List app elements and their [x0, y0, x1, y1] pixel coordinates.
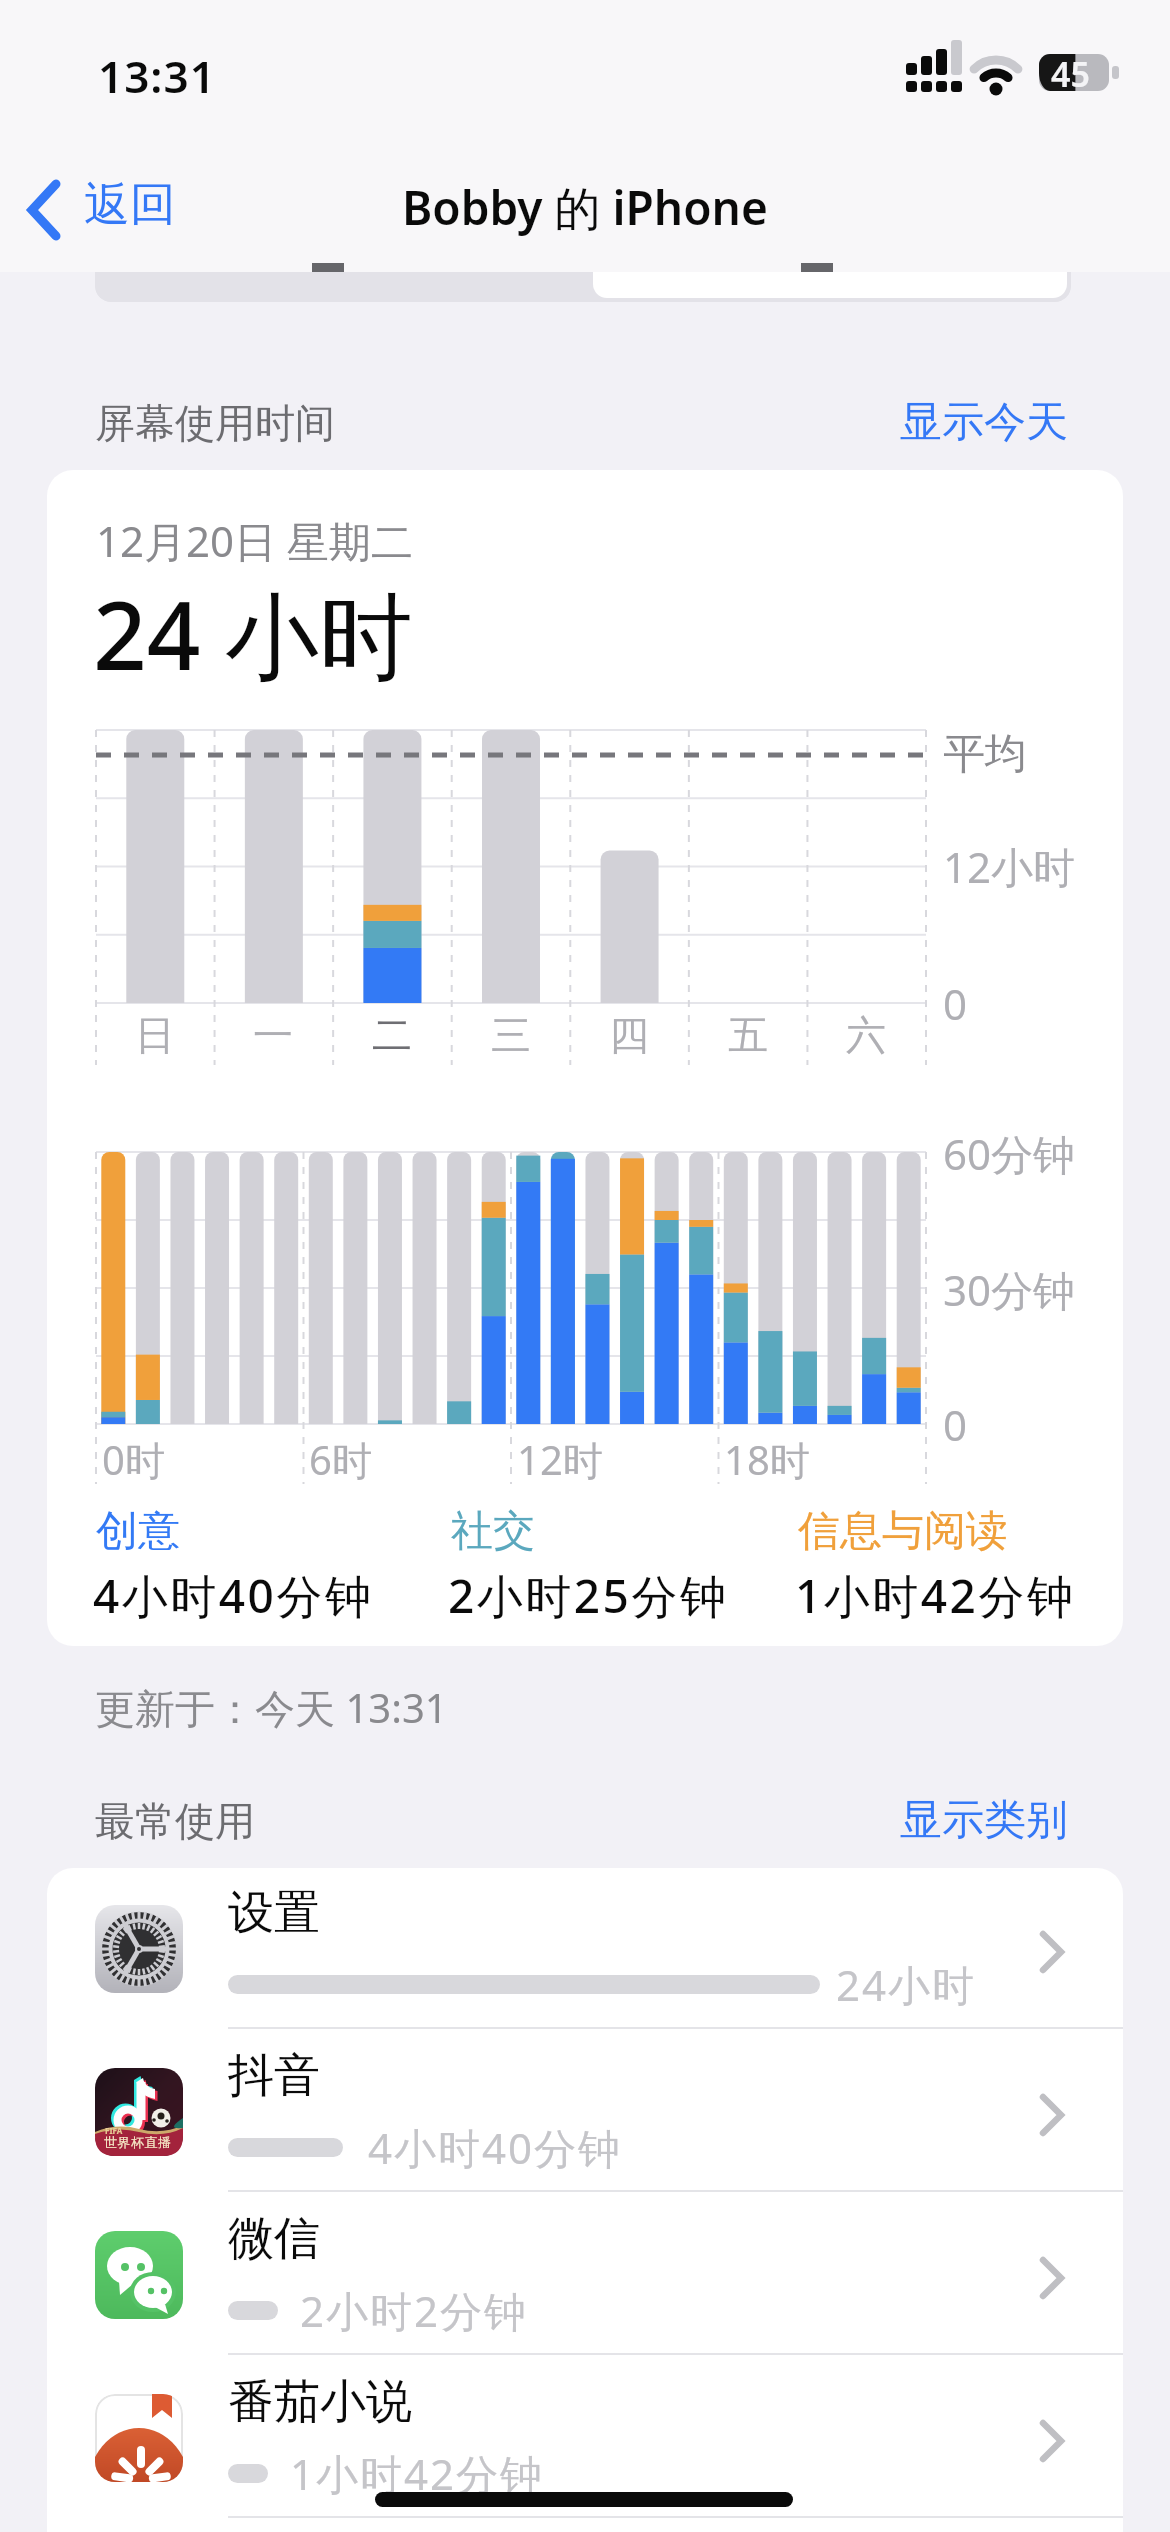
staticText: 四 — [609, 1010, 649, 1060]
staticText: FIFA — [105, 2125, 123, 2136]
staticText: 24小时 — [836, 1956, 977, 2013]
staticText: 18时 — [724, 1432, 810, 1487]
staticText: 1小时42分钟 — [795, 1564, 1076, 1627]
staticText: 日 — [135, 1010, 175, 1060]
button[interactable]: 微信 — [47, 2194, 1123, 2357]
button[interactable]: 显示类别 — [880, 1790, 1080, 1850]
staticText: 4小时40分钟 — [368, 2119, 623, 2176]
staticText: 三 — [491, 1010, 531, 1060]
staticText: 6时 — [309, 1432, 372, 1487]
staticText: 显示类别 — [900, 1794, 1068, 1847]
staticText: 最常使用 — [95, 1796, 255, 1846]
staticText: 番茄小说 — [228, 2373, 412, 2431]
staticText: 30分钟 — [943, 1261, 1076, 1318]
staticText: 五 — [728, 1010, 768, 1060]
staticText: 45 — [1051, 51, 1090, 97]
staticText: 13:31 — [98, 46, 216, 106]
staticText: 24 小时 — [93, 570, 413, 698]
staticText: 信息与阅读 — [798, 1505, 1008, 1558]
staticText: 六 — [846, 1010, 886, 1060]
staticText: 12时 — [517, 1432, 603, 1487]
button[interactable]: 返回 — [22, 170, 222, 246]
staticText: 2小时2分钟 — [300, 2282, 529, 2339]
staticText: 一 — [253, 1010, 293, 1060]
button[interactable]: 番茄小说 — [47, 2357, 1123, 2520]
staticText: 设置 — [228, 1884, 320, 1942]
staticText: 二 — [372, 1010, 412, 1060]
staticText: 1小时42分钟 — [290, 2445, 545, 2502]
staticText: 2小时25分钟 — [448, 1564, 729, 1627]
button[interactable]: 显示今天 — [880, 392, 1080, 452]
staticText: Bobby 的 iPhone — [402, 176, 768, 239]
staticText: 返回 — [84, 176, 176, 234]
staticText: 12月20日 星期二 — [96, 512, 414, 569]
staticText: 屏幕使用时间 — [95, 398, 335, 448]
staticText: 更新于：今天 13:31 — [95, 1680, 448, 1735]
staticText: 显示今天 — [900, 396, 1068, 449]
staticText: 12小时 — [943, 838, 1076, 895]
staticText: 0时 — [102, 1432, 165, 1487]
staticText: 4小时40分钟 — [93, 1564, 374, 1627]
staticText: 0 — [943, 975, 968, 1032]
staticText: 世界杯直播 — [104, 2134, 172, 2150]
staticText: 社交 — [451, 1505, 535, 1558]
staticText: 0 — [943, 1396, 968, 1453]
staticText: 平均 — [943, 728, 1027, 781]
staticText: 创意 — [96, 1505, 180, 1558]
button[interactable]: FIFA — [47, 2031, 1123, 2194]
button[interactable]: 设置 — [47, 1868, 1123, 2031]
staticText: 微信 — [228, 2210, 320, 2268]
staticText: 60分钟 — [943, 1125, 1076, 1182]
button[interactable] — [95, 272, 1071, 302]
staticText: 抖音 — [228, 2047, 320, 2105]
